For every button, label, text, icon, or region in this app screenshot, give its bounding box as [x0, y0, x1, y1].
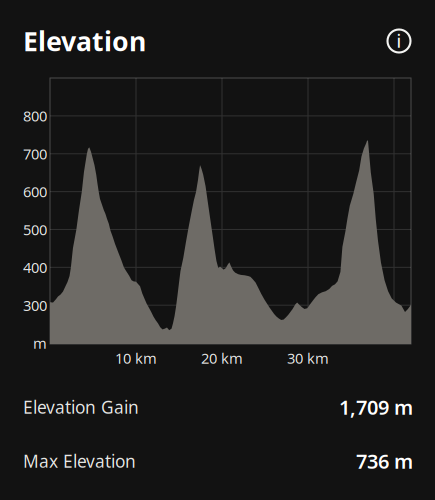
- staticText: m: [33, 333, 47, 353]
- button[interactable]: Max Elevation: [0, 434, 435, 488]
- staticText: 400: [23, 258, 47, 277]
- staticText: i: [396, 29, 401, 52]
- button[interactable]: Information: [379, 21, 419, 61]
- button[interactable]: Elevation Gain: [0, 380, 435, 434]
- staticText: 500: [23, 220, 47, 239]
- staticText: 30 km: [287, 348, 329, 368]
- staticText: 700: [23, 144, 47, 163]
- staticText: Elevation Gain: [23, 395, 139, 418]
- staticText: 600: [23, 182, 47, 201]
- staticText: Elevation: [23, 23, 146, 59]
- staticText: 736 m: [356, 448, 413, 474]
- staticText: Max Elevation: [23, 449, 136, 472]
- staticText: 20 km: [201, 348, 243, 368]
- staticText: 1,709 m: [339, 394, 413, 420]
- staticText: 800: [23, 106, 47, 126]
- staticText: 10 km: [115, 348, 157, 368]
- staticText: 300: [23, 295, 47, 315]
